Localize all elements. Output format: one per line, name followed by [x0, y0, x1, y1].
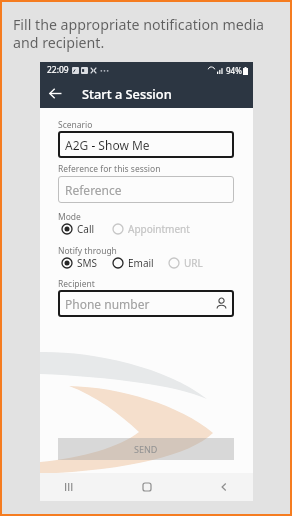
staticText: Scenario: [58, 119, 93, 131]
staticText: Fill the appropriate notification media …: [13, 15, 290, 52]
staticText: 22:09: [47, 64, 69, 76]
button[interactable]: URL: [165, 256, 203, 270]
button[interactable]: SEND: [58, 438, 234, 460]
button[interactable]: Pick contact: [215, 297, 228, 310]
staticText: Reference for this session: [58, 163, 161, 175]
staticText: SEND: [134, 443, 158, 455]
staticText: Mode: [58, 211, 81, 223]
button[interactable]: Recents: [58, 476, 80, 498]
button[interactable]: Home: [136, 476, 158, 498]
button[interactable]: Call: [58, 222, 95, 236]
button[interactable]: Back: [40, 78, 70, 108]
staticText: SMS: [77, 256, 98, 270]
staticText: Appointment: [128, 222, 190, 236]
button[interactable]: Back: [213, 476, 235, 498]
staticText: Phone number: [65, 296, 150, 312]
staticText: URL: [184, 256, 203, 270]
button[interactable]: Appointment: [109, 222, 190, 236]
staticText: Recipient: [58, 278, 95, 290]
button[interactable]: Email: [109, 256, 154, 270]
button[interactable]: SMS: [58, 256, 98, 270]
staticText: Notify through: [58, 245, 117, 257]
staticText: Start a Session: [82, 85, 172, 102]
staticText: Reference: [65, 182, 122, 198]
staticText: A2G - Show Me: [65, 137, 150, 153]
staticText: Email: [128, 256, 154, 270]
staticText: Call: [77, 222, 95, 236]
staticText: 94%: [226, 65, 242, 76]
